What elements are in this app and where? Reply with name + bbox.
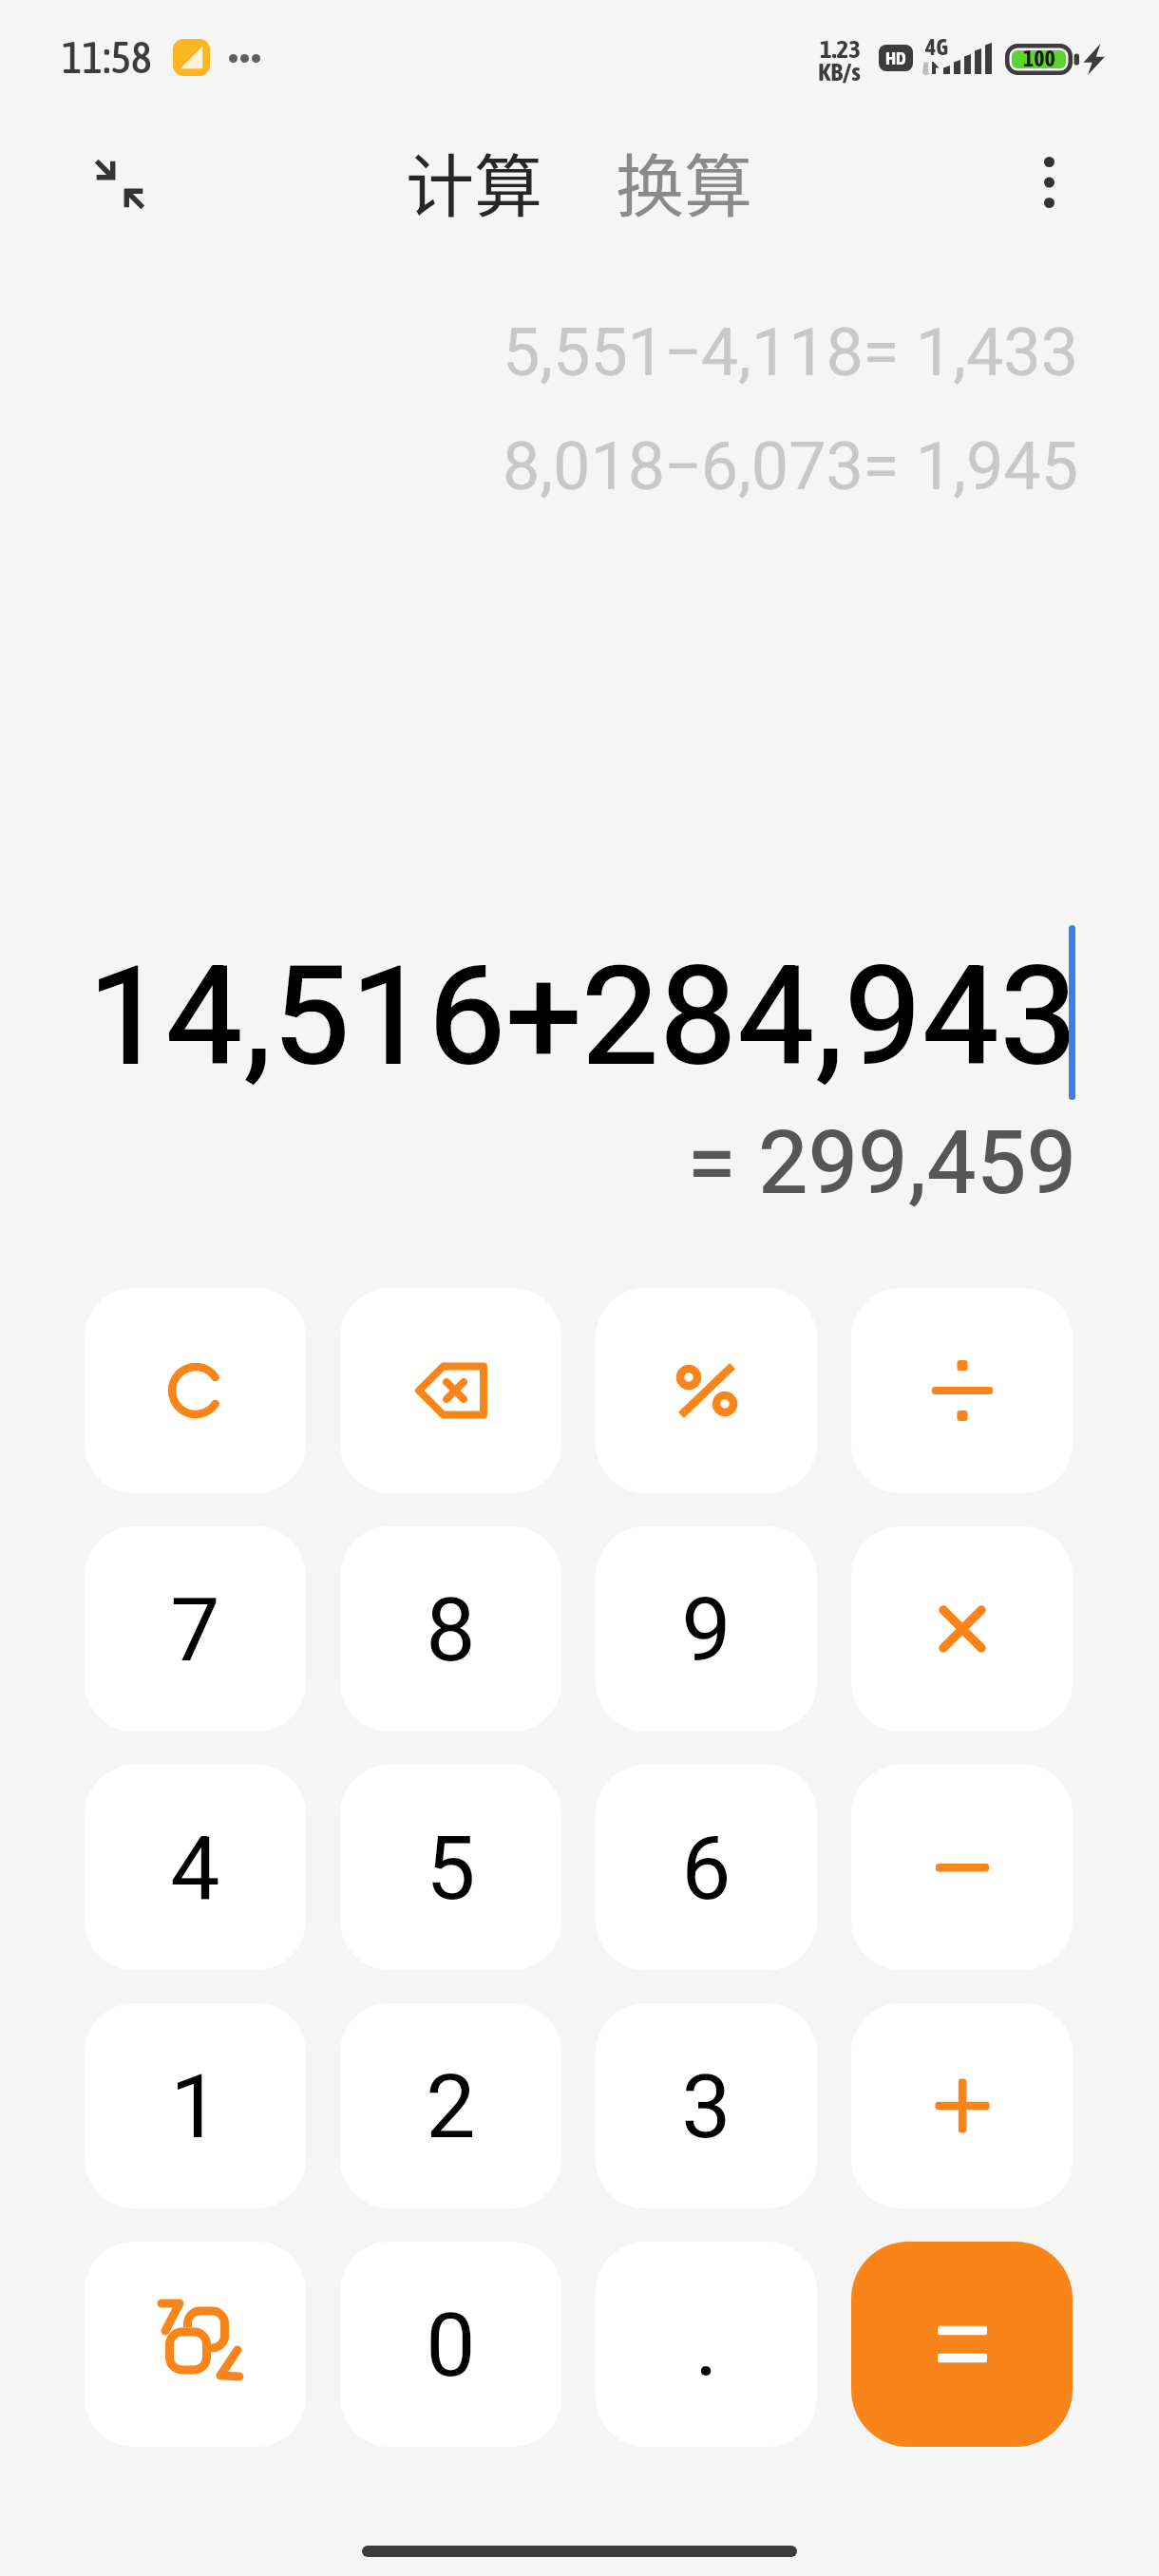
- button[interactable]: Percent: [596, 1288, 817, 1493]
- button[interactable]: Delete: [340, 1288, 561, 1493]
- staticText: 100: [1023, 46, 1055, 72]
- button[interactable]: Scientific: [85, 2242, 306, 2447]
- staticText: 5,551−4,118= 1,433: [503, 306, 1078, 404]
- staticText: 14,516+284,943: [87, 919, 1078, 1122]
- button[interactable]: 5: [340, 1765, 561, 1970]
- staticText: 7: [170, 1568, 220, 1698]
- button[interactable]: 1: [85, 2003, 306, 2208]
- button[interactable]: Add: [851, 2003, 1073, 2208]
- button[interactable]: More options: [999, 133, 1098, 232]
- staticText: 5: [426, 1807, 476, 1937]
- staticText: = 299,459: [688, 1101, 1077, 1231]
- button[interactable]: 换算: [606, 127, 763, 234]
- staticText: KB/s: [818, 57, 861, 86]
- button[interactable]: 4: [85, 1765, 306, 1970]
- staticText: 3: [681, 2045, 731, 2175]
- staticText: 8,018−6,073= 1,945: [503, 420, 1078, 518]
- button[interactable]: 0: [340, 2242, 561, 2447]
- button[interactable]: Collapse: [70, 135, 169, 234]
- staticText: 11:58: [62, 32, 152, 83]
- staticText: 计算: [406, 131, 543, 230]
- button[interactable]: Subtract: [851, 1765, 1073, 1970]
- button[interactable]: 7: [85, 1526, 306, 1732]
- button[interactable]: .: [596, 2242, 817, 2447]
- staticText: 6: [681, 1807, 731, 1937]
- staticText: HD: [885, 47, 906, 68]
- staticText: 9: [681, 1568, 731, 1698]
- staticText: .: [694, 2283, 718, 2414]
- staticText: 换算: [616, 131, 753, 230]
- staticText: 2: [426, 2045, 476, 2175]
- button[interactable]: 6: [596, 1765, 817, 1970]
- button[interactable]: Divide: [851, 1288, 1073, 1493]
- staticText: 4: [170, 1807, 220, 1937]
- button[interactable]: 计算: [396, 127, 553, 234]
- staticText: 0: [426, 2283, 476, 2414]
- staticText: 4G: [925, 34, 948, 61]
- button[interactable]: Clear: [85, 1288, 306, 1493]
- staticText: 8: [426, 1568, 476, 1698]
- button[interactable]: 8: [340, 1526, 561, 1732]
- button[interactable]: 9: [596, 1526, 817, 1732]
- button[interactable]: 2: [340, 2003, 561, 2208]
- button[interactable]: 3: [596, 2003, 817, 2208]
- staticText: 1.23: [820, 34, 861, 64]
- button[interactable]: Equals: [851, 2242, 1073, 2447]
- staticText: 1: [170, 2045, 220, 2175]
- button[interactable]: Multiply: [851, 1526, 1073, 1732]
